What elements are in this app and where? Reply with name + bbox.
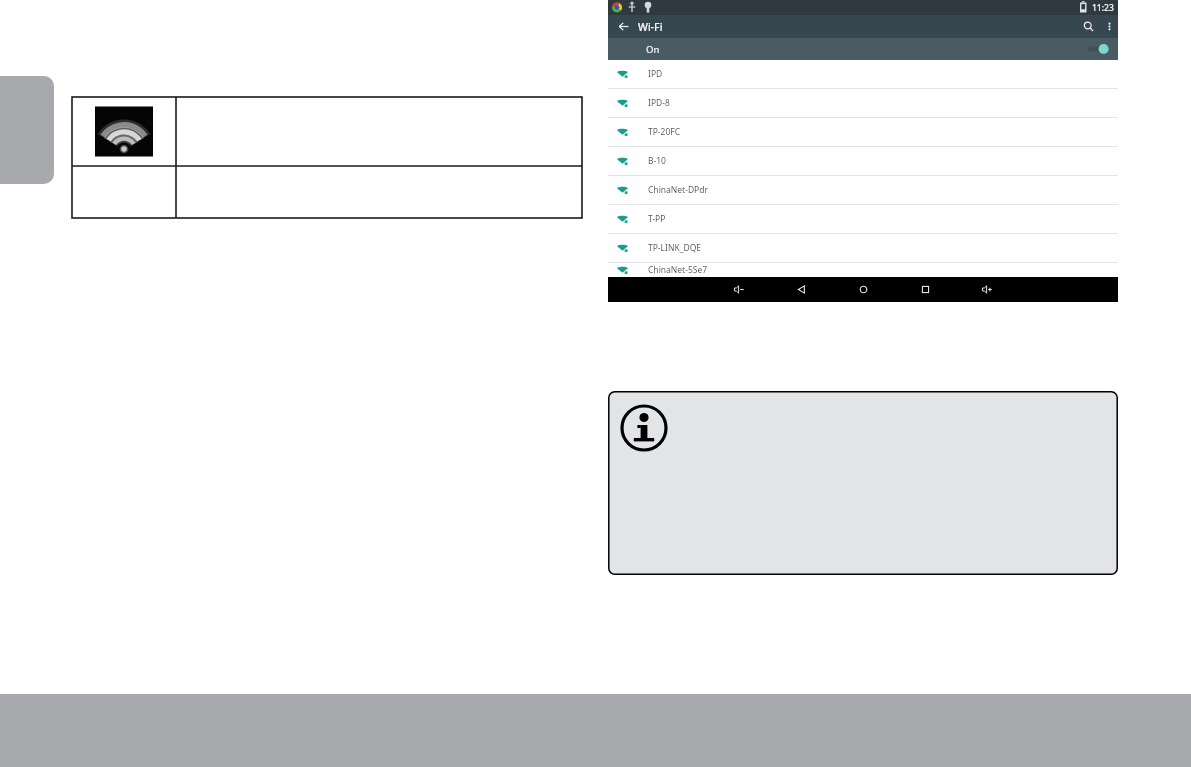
button[interactable]: ChinaNet-DPdr — [608, 176, 1118, 205]
staticText: B-10 — [648, 155, 666, 167]
button[interactable]: IPD — [608, 60, 1118, 89]
button[interactable]: On — [608, 38, 1118, 60]
staticText: 11:23 — [1092, 2, 1114, 14]
button[interactable]: B-10 — [608, 147, 1118, 176]
button[interactable]: Volume down — [708, 277, 770, 302]
button[interactable]: TP-LINK_DQE — [608, 234, 1118, 263]
button[interactable]: Volume up — [956, 277, 1018, 302]
staticText: Wi-Fi — [638, 20, 663, 34]
button[interactable]: Search — [1076, 15, 1100, 38]
button[interactable]: Home — [832, 277, 894, 302]
button[interactable]: T-PP — [608, 205, 1118, 234]
button[interactable]: Back — [608, 15, 638, 38]
button[interactable]: More options — [1100, 15, 1118, 38]
button[interactable]: Recents — [894, 277, 956, 302]
button[interactable]: ChinaNet-5Se7 — [608, 263, 1118, 277]
button[interactable]: Back — [770, 277, 832, 302]
staticText: TP-20FC — [648, 126, 681, 138]
staticText: On — [646, 43, 660, 56]
button[interactable]: Wi-Fi on — [1086, 42, 1108, 56]
staticText: T-PP — [648, 213, 666, 225]
staticText: IPD — [648, 68, 663, 80]
button[interactable]: TP-20FC — [608, 118, 1118, 147]
staticText: ChinaNet-5Se7 — [648, 264, 708, 276]
staticText: TP-LINK_DQE — [648, 242, 702, 254]
staticText: IPD-8 — [648, 97, 670, 109]
button[interactable]: IPD-8 — [608, 89, 1118, 118]
staticText: ChinaNet-DPdr — [648, 184, 708, 196]
